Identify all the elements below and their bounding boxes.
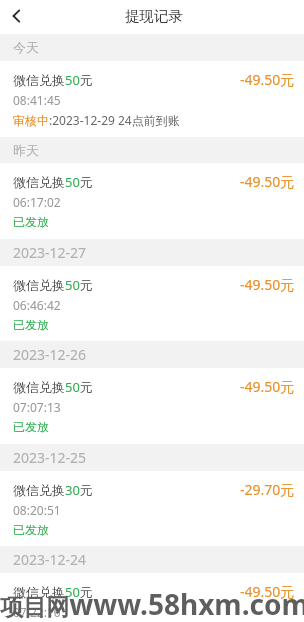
staticText: 06:46:42 xyxy=(13,297,61,313)
button[interactable]: 微信兑换50元 xyxy=(0,266,304,342)
staticText: -49.50元 xyxy=(240,172,295,191)
staticText: 微信兑换50元 xyxy=(13,276,93,294)
staticText: 07:22:10 xyxy=(13,604,61,620)
staticText: 微信兑换30元 xyxy=(13,481,93,499)
staticText: 07:07:13 xyxy=(13,399,61,415)
button[interactable]: 微信兑换50元 xyxy=(0,163,304,239)
staticText: 项目网www.58hxm.com xyxy=(0,585,304,622)
button[interactable]: 微信兑换50元 xyxy=(0,573,304,622)
staticText: 08:20:51 xyxy=(13,502,61,518)
staticText: 2023-12-25 xyxy=(13,448,87,467)
staticText: 今天 xyxy=(13,39,39,55)
button[interactable]: Back xyxy=(0,0,34,34)
staticText: 审核中:2023-12-29 24点前到账 xyxy=(13,112,180,128)
staticText: -29.70元 xyxy=(240,480,295,499)
staticText: 微信兑换50元 xyxy=(13,378,93,396)
staticText: 已发放 xyxy=(13,419,49,434)
staticText: 微信兑换50元 xyxy=(13,583,93,601)
staticText: -49.50元 xyxy=(240,377,295,396)
staticText: 06:17:02 xyxy=(13,194,61,210)
staticText: -49.50元 xyxy=(240,275,295,294)
staticText: 已发放 xyxy=(13,317,49,332)
staticText: -49.50元 xyxy=(240,582,295,601)
button[interactable]: 微信兑换50元 xyxy=(0,368,304,444)
staticText: 已发放 xyxy=(13,214,49,229)
staticText: 2023-12-24 xyxy=(13,550,87,569)
staticText: 2023-12-26 xyxy=(13,345,87,364)
staticText: -49.50元 xyxy=(240,70,295,89)
staticText: 08:41:45 xyxy=(13,92,61,108)
button[interactable]: 微信兑换30元 xyxy=(0,471,304,547)
staticText: 昨天 xyxy=(13,142,39,158)
button[interactable]: 微信兑换50元 xyxy=(0,61,304,137)
staticText: 2023-12-27 xyxy=(13,243,87,262)
staticText: 微信兑换50元 xyxy=(13,173,93,191)
staticText: 提现记录 xyxy=(125,7,183,25)
staticText: 已发放 xyxy=(13,522,49,537)
staticText: 微信兑换50元 xyxy=(13,71,93,89)
